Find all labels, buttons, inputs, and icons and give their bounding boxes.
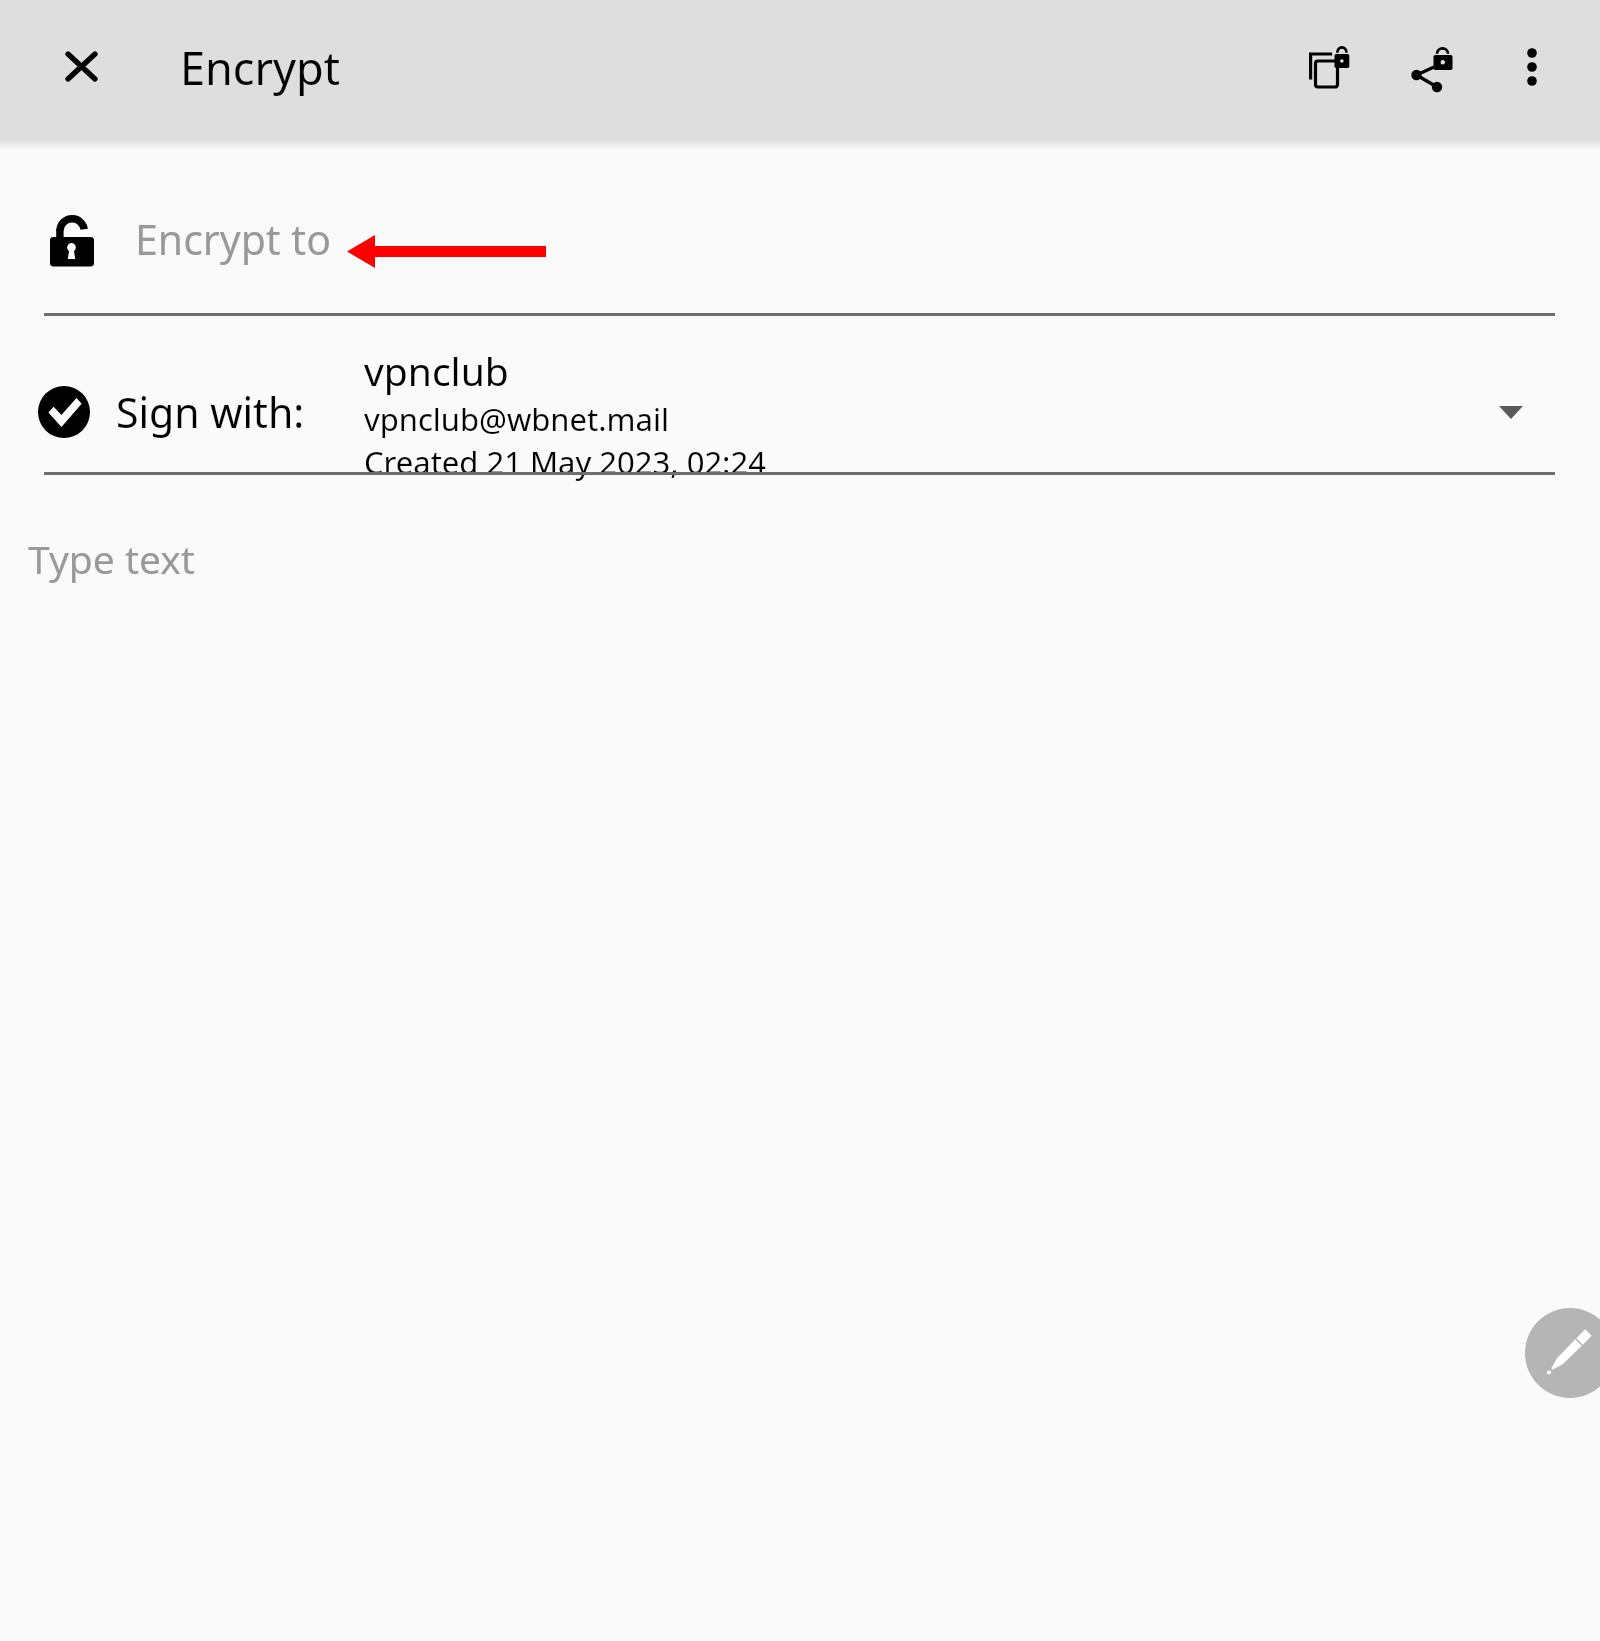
staticText: Type text <box>28 532 195 585</box>
button[interactable]: Type text <box>0 500 1600 1200</box>
staticText: Encrypt <box>180 37 340 98</box>
staticText: Sign with: <box>116 384 305 440</box>
button[interactable]: Copy encrypted <box>1274 0 1384 138</box>
button[interactable]: Sign with <box>0 316 1600 472</box>
staticText: vpnclub <box>364 344 509 397</box>
button[interactable]: More options <box>1484 0 1580 138</box>
button[interactable]: Edit <box>1525 1308 1600 1398</box>
staticText: Created 21 May 2023, 02:24 <box>364 441 766 483</box>
button[interactable]: Close <box>0 0 162 138</box>
staticText: vpnclub@wbnet.mail <box>364 398 669 440</box>
staticText: Encrypt to <box>135 211 331 267</box>
button[interactable]: Share encrypted <box>1374 0 1484 138</box>
button[interactable]: Choose signing key <box>1450 340 1570 480</box>
button[interactable]: Encrypt to <box>0 160 1600 313</box>
